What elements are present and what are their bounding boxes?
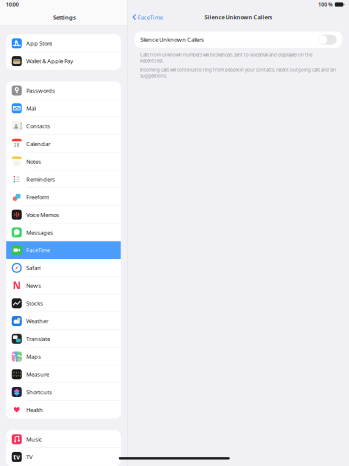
staticText: News — [26, 282, 41, 289]
button[interactable]: Contacts — [6, 117, 121, 135]
button[interactable]: Reminders — [6, 170, 121, 188]
staticText: N — [13, 279, 21, 292]
button[interactable]: Voice Memos — [6, 206, 121, 223]
staticText: FaceTime — [26, 246, 50, 254]
staticText: Weather — [26, 317, 48, 325]
staticText: Health — [26, 406, 43, 414]
staticText: Calls from unknown numbers will be silen… — [140, 52, 312, 64]
button[interactable]: Wallet & Apple Pay — [6, 52, 121, 70]
staticText: Translate — [26, 335, 50, 343]
staticText: Shortcuts — [26, 388, 52, 396]
button[interactable]: Weather — [6, 312, 121, 330]
staticText: Safari — [26, 264, 40, 272]
staticText: Stocks — [26, 299, 43, 307]
button[interactable]: Messages — [6, 223, 121, 241]
button[interactable]: Measure — [6, 365, 121, 383]
staticText: tv — [13, 452, 20, 461]
staticText: Voice Memos — [26, 211, 59, 219]
staticText: Mail — [26, 104, 36, 112]
staticText: Maps — [26, 353, 41, 360]
button[interactable]: Shortcuts — [6, 383, 121, 401]
button[interactable]: FaceTime — [6, 241, 121, 259]
button[interactable]: FaceTime — [130, 9, 166, 25]
staticText: Music — [26, 435, 42, 443]
staticText: TV — [26, 453, 32, 461]
button[interactable]: Mail — [6, 99, 121, 117]
staticText: Freeform — [26, 193, 49, 201]
staticText: Silence Unknown Callers — [140, 36, 204, 43]
staticText: 10:00 — [6, 1, 19, 8]
staticText: Messages — [26, 228, 53, 236]
staticText: Wallet & Apple Pay — [26, 57, 73, 65]
button[interactable]: tv — [6, 448, 121, 466]
staticText: App Store — [26, 39, 52, 47]
staticText: FaceTime — [138, 13, 163, 21]
staticText: Reminders — [26, 175, 55, 183]
staticText: Contacts — [26, 122, 50, 130]
button[interactable]: N — [6, 277, 121, 294]
staticText: Measure — [26, 370, 49, 378]
staticText: Silence Unknown Callers — [204, 13, 272, 21]
button[interactable]: 28 — [6, 135, 121, 153]
staticText: 28 — [14, 142, 20, 148]
staticText: 100 % — [318, 1, 332, 8]
button[interactable]: Safari — [6, 259, 121, 277]
staticText: Settings — [53, 13, 76, 21]
button[interactable]: Health — [6, 401, 121, 418]
button[interactable]: Freeform — [6, 188, 121, 206]
button[interactable]: Music — [6, 430, 121, 448]
button[interactable]: Translate — [6, 330, 121, 348]
button[interactable]: Stocks — [6, 294, 121, 312]
button[interactable]: Passwords — [6, 82, 121, 99]
staticText: Incoming calls will continue to ring fro… — [140, 67, 336, 79]
button[interactable]: Maps — [6, 348, 121, 365]
staticText: Passwords — [26, 87, 55, 94]
staticText: Calendar — [26, 140, 50, 148]
button[interactable]: Notes — [6, 153, 121, 170]
staticText: Notes — [26, 158, 41, 165]
button[interactable]: Silence Unknown Callers — [128, 31, 349, 48]
button[interactable]: App Store — [6, 34, 121, 52]
